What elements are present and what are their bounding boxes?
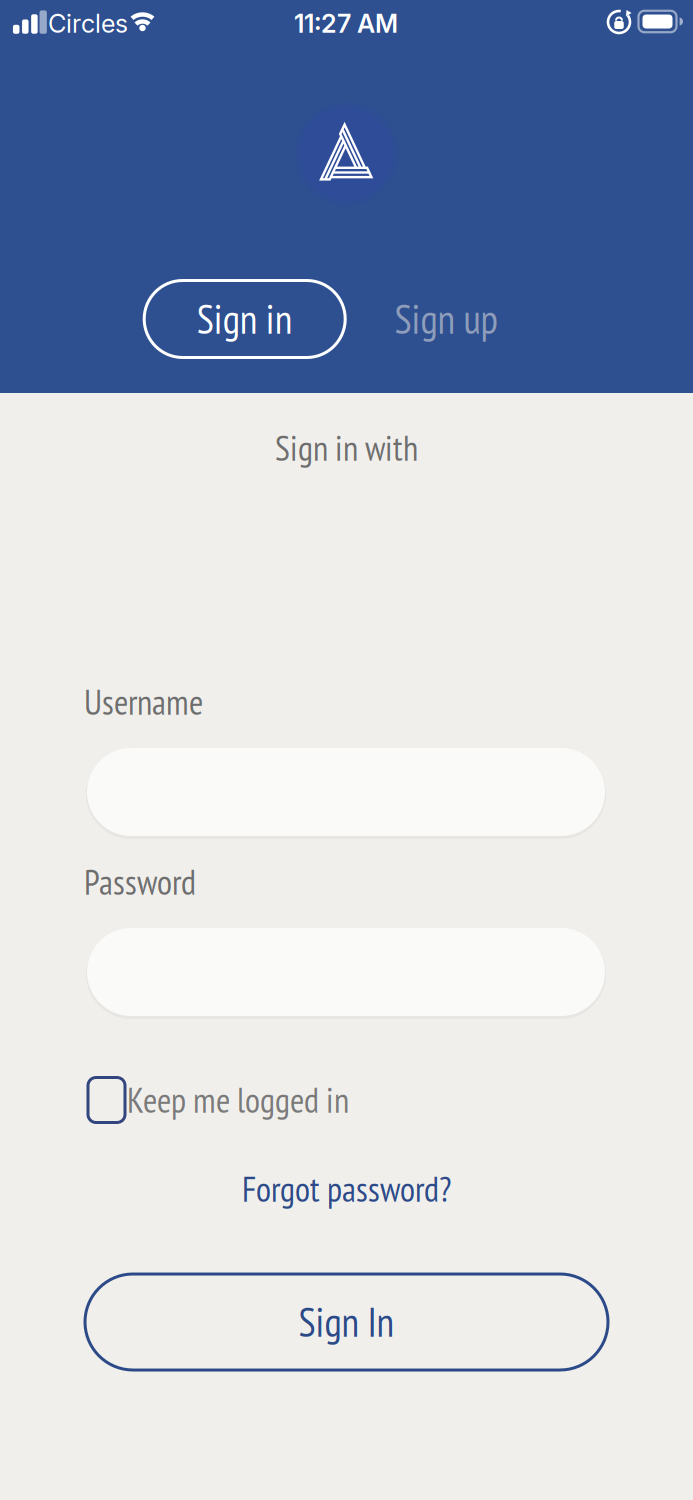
staticText: Password bbox=[84, 860, 196, 904]
staticText: Username bbox=[84, 680, 203, 724]
staticText: Sign in with bbox=[275, 426, 418, 470]
button[interactable]: Keep me logged in bbox=[0, 1077, 693, 1122]
staticText: 11:27 AM bbox=[294, 8, 398, 39]
staticText: Keep me logged in bbox=[127, 1078, 349, 1122]
staticText: Sign in bbox=[197, 293, 293, 345]
button[interactable]: Sign in bbox=[144, 280, 345, 357]
button[interactable]: Sign up bbox=[394, 293, 497, 345]
staticText: Circles bbox=[48, 8, 128, 39]
button[interactable]: Sign In bbox=[85, 1274, 608, 1370]
staticText: Forgot password? bbox=[242, 1167, 451, 1211]
button[interactable]: Forgot password? bbox=[242, 1167, 451, 1211]
staticText: Sign up bbox=[394, 293, 497, 345]
staticText: Sign In bbox=[298, 1296, 394, 1348]
